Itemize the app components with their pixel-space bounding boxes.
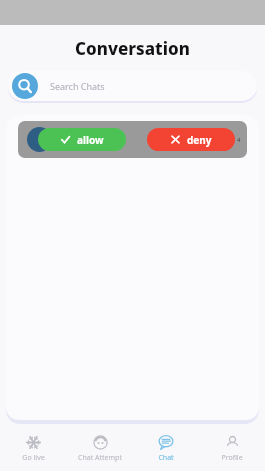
- staticText: Profile: [221, 453, 243, 463]
- staticText: allow: [77, 133, 104, 147]
- staticText: 4: [237, 136, 241, 144]
- button[interactable]: Go live: [0, 426, 67, 471]
- button[interactable]: deny: [147, 128, 235, 151]
- button[interactable]: Profile: [199, 426, 265, 471]
- button[interactable]: Chat Attempt: [67, 426, 133, 471]
- staticText: ****: [58, 134, 76, 145]
- button[interactable]: Chat: [133, 426, 199, 471]
- staticText: Chat Attempt: [78, 453, 122, 463]
- staticText: Chat: [158, 453, 174, 463]
- other: Search: [12, 73, 38, 99]
- button[interactable]: Search: [8, 71, 257, 101]
- button[interactable]: allow: [38, 128, 126, 151]
- staticText: deny: [187, 133, 212, 147]
- staticText: Search Chats: [50, 80, 105, 92]
- staticText: Conversation: [75, 37, 190, 60]
- button[interactable]: ****: [18, 121, 247, 158]
- staticText: Go live: [22, 453, 45, 463]
